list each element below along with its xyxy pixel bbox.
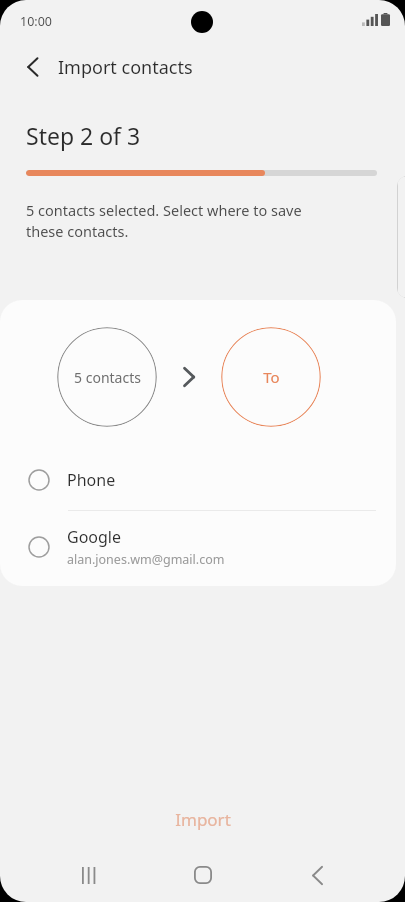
button[interactable]: Recent apps xyxy=(67,853,111,897)
staticText: Import contacts xyxy=(58,55,193,80)
button[interactable]: Back xyxy=(295,853,339,897)
button[interactable]: 5 contacts xyxy=(57,327,157,427)
staticText: alan.jones.wm@gmail.com xyxy=(67,551,225,568)
staticText: To xyxy=(263,367,280,387)
staticText: 5 contacts selected. Select where to sav… xyxy=(26,200,302,242)
staticText: Step 2 of 3 xyxy=(26,120,141,151)
button[interactable]: Import xyxy=(0,792,405,846)
staticText: 5 contacts xyxy=(74,368,141,387)
button[interactable]: Google xyxy=(0,511,396,583)
staticText: 10:00 xyxy=(20,13,52,30)
staticText: Phone xyxy=(67,469,116,491)
button[interactable]: Back xyxy=(16,50,50,84)
button[interactable]: Home xyxy=(181,853,225,897)
staticText: Import xyxy=(175,808,231,831)
staticText: Google xyxy=(67,526,122,548)
button[interactable]: To xyxy=(221,327,321,427)
button[interactable]: Phone xyxy=(0,450,396,510)
